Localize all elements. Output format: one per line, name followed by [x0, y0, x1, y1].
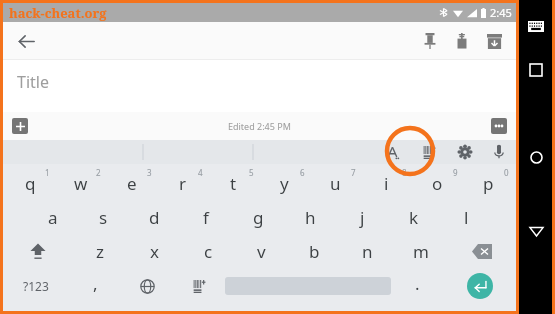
button[interactable]: v: [235, 234, 288, 268]
button[interactable]: Reminder: [446, 25, 478, 57]
button[interactable]: ?123: [3, 268, 69, 304]
button[interactable]: u: [310, 166, 361, 200]
staticText: 5: [249, 167, 254, 178]
button[interactable]: l: [440, 200, 492, 234]
button[interactable]: Keyboard: [523, 13, 549, 39]
button[interactable]: b: [288, 234, 341, 268]
button[interactable]: Pin: [414, 25, 446, 57]
staticText: v: [257, 240, 266, 263]
button[interactable]: Enter: [467, 273, 493, 299]
button[interactable]: Recents: [523, 57, 549, 83]
button[interactable]: .: [391, 268, 443, 304]
staticText: 4: [198, 167, 203, 178]
staticText: 7: [351, 167, 356, 178]
button[interactable]: y: [259, 166, 310, 200]
button[interactable]: s: [78, 200, 129, 234]
staticText: y: [280, 172, 289, 195]
button[interactable]: Voice input: [486, 140, 512, 164]
staticText: q: [25, 172, 36, 195]
button[interactable]: c: [181, 234, 235, 268]
staticText: 0: [504, 167, 509, 178]
button[interactable]: m: [394, 234, 447, 268]
staticText: x: [150, 240, 159, 263]
staticText: ,: [93, 272, 98, 295]
button[interactable]: e: [106, 166, 157, 200]
button[interactable]: Settings: [452, 140, 478, 164]
button[interactable]: Shift: [3, 234, 73, 268]
staticText: 2:45: [490, 5, 512, 20]
staticText: w: [74, 172, 88, 195]
staticText: h: [305, 206, 316, 229]
button[interactable]: t: [208, 166, 259, 200]
button[interactable]: Home: [523, 144, 549, 170]
button[interactable]: Archive: [478, 25, 510, 57]
staticText: p: [483, 172, 494, 195]
staticText: 1: [45, 167, 50, 178]
button[interactable]: Delete: [447, 234, 516, 268]
staticText: r: [179, 172, 187, 195]
button[interactable]: j: [336, 200, 388, 234]
button[interactable]: h: [284, 200, 336, 234]
staticText: hack-cheat.org: [9, 4, 107, 22]
staticText: f: [203, 206, 209, 229]
button[interactable]: g: [232, 200, 284, 234]
button[interactable]: Add: [12, 118, 28, 134]
button[interactable]: w: [55, 166, 106, 200]
staticText: 8: [402, 167, 407, 178]
button[interactable]: o: [412, 166, 463, 200]
button[interactable]: q: [5, 166, 55, 200]
button[interactable]: r: [157, 166, 208, 200]
button[interactable]: d: [129, 200, 180, 234]
staticText: e: [127, 172, 137, 195]
staticText: a: [48, 206, 58, 229]
button[interactable]: Title: [17, 71, 49, 93]
button[interactable]: Scan barcode: [173, 268, 225, 304]
button[interactable]: Text format: [380, 140, 406, 164]
button[interactable]: Scan barcode: [416, 140, 442, 164]
staticText: m: [413, 240, 429, 263]
staticText: 3: [147, 167, 152, 178]
staticText: g: [253, 206, 264, 229]
staticText: 6: [300, 167, 305, 178]
staticText: 9: [453, 167, 458, 178]
button[interactable]: ,: [69, 268, 121, 304]
staticText: l: [464, 206, 469, 229]
staticText: Edited 2:45 PM: [228, 120, 291, 132]
staticText: c: [204, 240, 213, 263]
staticText: ?123: [23, 278, 49, 294]
button[interactable]: n: [341, 234, 394, 268]
button[interactable]: Change language: [121, 268, 173, 304]
staticText: t: [230, 172, 237, 195]
staticText: s: [99, 206, 108, 229]
button[interactable]: More options: [491, 118, 507, 134]
staticText: k: [409, 206, 419, 229]
staticText: .: [415, 272, 420, 295]
button[interactable]: Back: [11, 26, 41, 56]
button[interactable]: p: [463, 166, 514, 200]
button[interactable]: k: [388, 200, 440, 234]
staticText: j: [360, 206, 365, 229]
button[interactable]: Back: [523, 218, 549, 244]
staticText: b: [309, 240, 320, 263]
button[interactable]: x: [127, 234, 181, 268]
button[interactable]: z: [73, 234, 127, 268]
staticText: u: [330, 172, 341, 195]
staticText: i: [384, 172, 389, 195]
button[interactable]: f: [180, 200, 232, 234]
button[interactable]: a: [27, 200, 78, 234]
staticText: n: [362, 240, 373, 263]
staticText: z: [96, 240, 104, 263]
staticText: o: [432, 172, 443, 195]
staticText: 2: [96, 167, 101, 178]
button[interactable]: i: [361, 166, 412, 200]
staticText: d: [149, 206, 160, 229]
